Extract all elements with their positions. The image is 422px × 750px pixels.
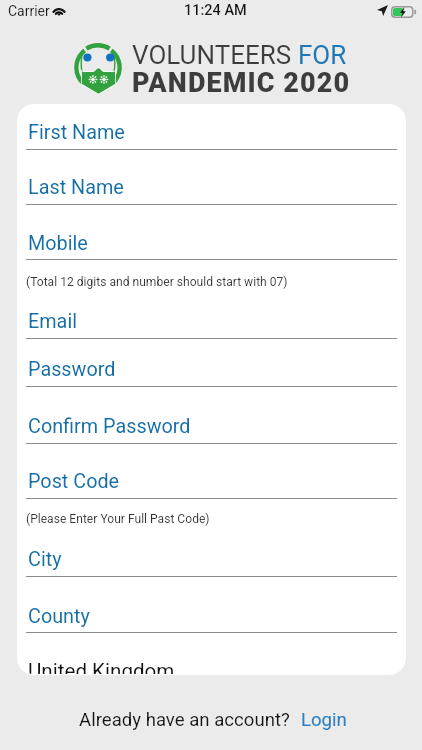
staticText: City xyxy=(28,548,62,571)
staticText: (Please Enter Your Full Past Code) xyxy=(26,512,210,526)
button[interactable]: Login xyxy=(296,705,348,739)
staticText: Already have an account? xyxy=(79,709,290,731)
staticText: Confirm Password xyxy=(28,415,191,438)
staticText: First Name xyxy=(28,121,125,144)
button[interactable]: City xyxy=(27,548,397,574)
other: Battery xyxy=(391,6,416,18)
other: Location xyxy=(377,5,388,16)
button[interactable]: County xyxy=(27,605,397,631)
button[interactable]: Email xyxy=(27,310,397,336)
staticText: Carrier xyxy=(8,3,50,19)
button[interactable]: Post Code xyxy=(27,470,397,496)
other: Wi-Fi xyxy=(51,5,67,16)
button[interactable]: Confirm Password xyxy=(27,415,397,441)
staticText: Email xyxy=(28,310,78,333)
button[interactable]: Mobile xyxy=(27,232,397,258)
staticText: PANDEMIC 2020 xyxy=(132,67,351,99)
staticText: Mobile xyxy=(28,232,88,255)
button[interactable]: First Name xyxy=(27,121,397,147)
other: Volunteers for Pandemic logo xyxy=(72,38,124,96)
staticText: County xyxy=(28,605,90,628)
staticText: Last Name xyxy=(28,176,124,199)
button[interactable]: Password xyxy=(27,358,397,384)
staticText: FOR xyxy=(298,40,347,70)
staticText: VOLUNTEERS xyxy=(132,40,298,70)
staticText: (Total 12 digits and number should start… xyxy=(26,275,288,289)
button[interactable]: Last Name xyxy=(27,176,397,202)
staticText: Login xyxy=(301,709,347,731)
staticText: Password xyxy=(28,358,116,381)
staticText: 11:24 AM xyxy=(184,2,247,19)
staticText: Post Code xyxy=(28,470,120,493)
staticText: United Kingdom xyxy=(28,659,175,674)
